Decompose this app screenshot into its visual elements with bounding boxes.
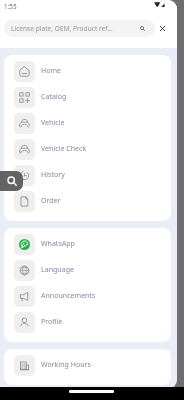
staticText: License plate, OEM, Product ref... xyxy=(11,24,113,33)
button[interactable]: Working Hours xyxy=(4,352,171,378)
staticText: Order xyxy=(41,195,61,205)
staticText: 1:55 xyxy=(4,2,17,11)
staticText: History xyxy=(41,169,65,179)
button[interactable]: License plate, OEM, Product ref... xyxy=(4,20,155,37)
button[interactable]: WhatsApp xyxy=(4,231,171,257)
button[interactable]: Vehicle Check xyxy=(4,136,171,162)
button[interactable]: Home xyxy=(4,58,171,84)
staticText: Home xyxy=(41,65,62,75)
staticText: Profile xyxy=(41,316,63,326)
staticText: WhatsApp xyxy=(41,238,75,248)
button[interactable]: Language xyxy=(4,257,171,283)
button[interactable]: History xyxy=(4,162,171,188)
button[interactable]: Profile xyxy=(4,309,171,335)
button[interactable]: Order xyxy=(4,188,171,214)
button[interactable]: Announcements xyxy=(4,283,171,309)
button[interactable]: Vehicle xyxy=(4,110,171,136)
staticText: Announcements xyxy=(41,290,96,300)
staticText: Vehicle Check xyxy=(41,143,87,153)
staticText: Working Hours xyxy=(41,359,91,369)
button[interactable]: Catalog xyxy=(4,84,171,110)
button[interactable]: Close search xyxy=(155,21,170,36)
button[interactable]: Search xyxy=(0,171,23,191)
staticText: Language xyxy=(41,264,74,274)
staticText: Catalog xyxy=(41,91,67,101)
staticText: Vehicle xyxy=(41,117,65,127)
